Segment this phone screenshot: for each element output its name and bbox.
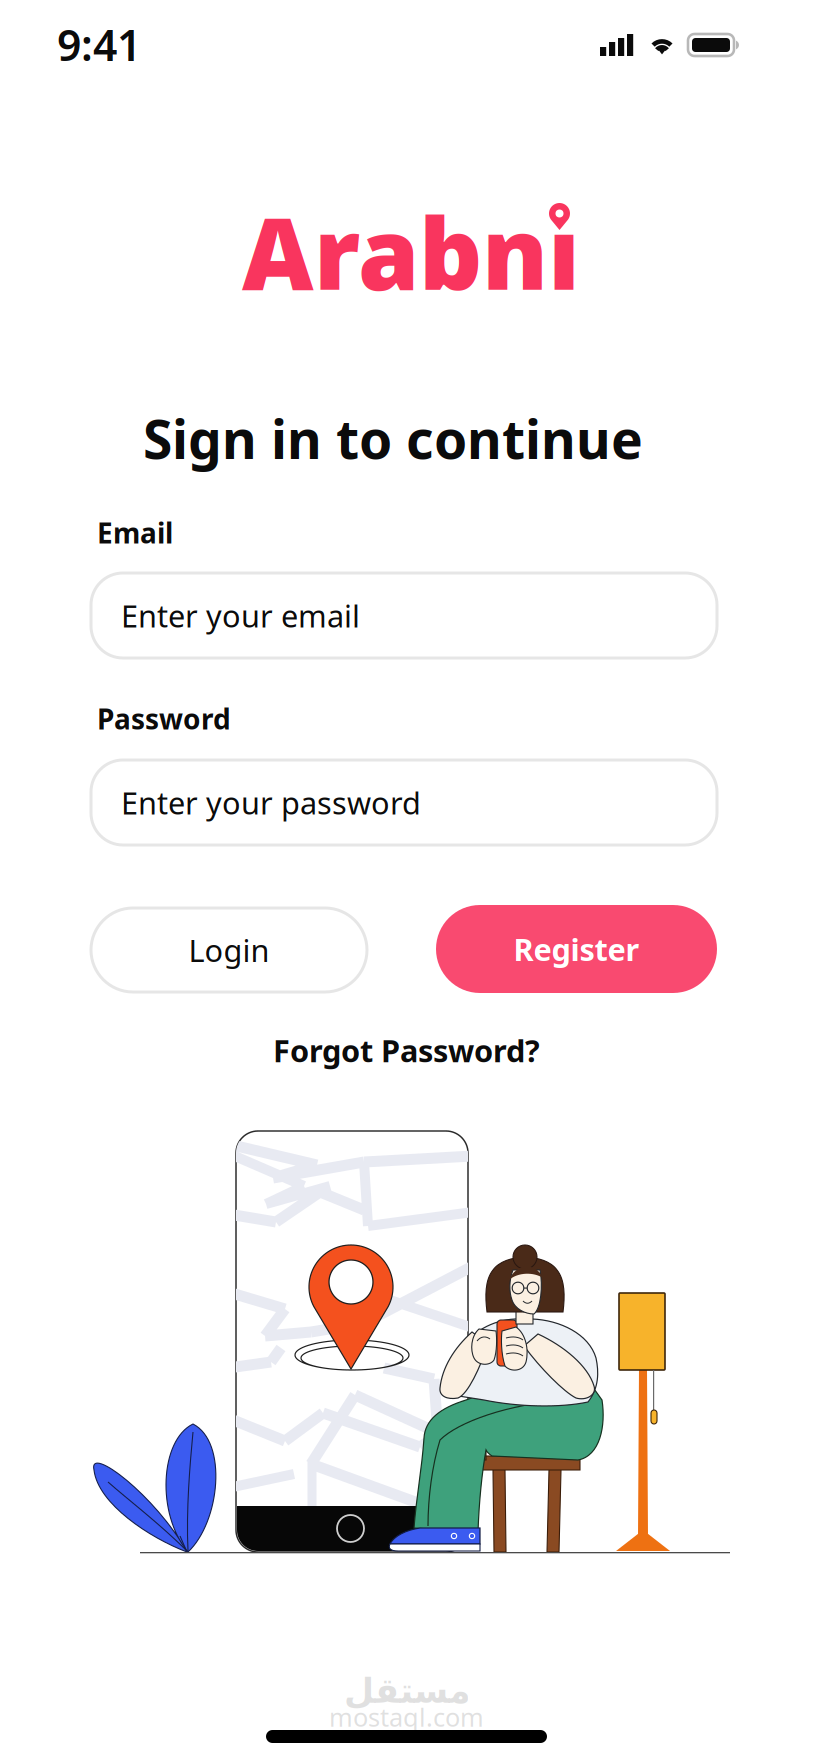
staticText: Password [97, 700, 231, 737]
staticText: mostaql.com [329, 1700, 484, 1734]
button[interactable]: Register [436, 905, 717, 993]
button[interactable]: Enter your email [91, 573, 717, 658]
staticText: Email [97, 514, 173, 551]
staticText: Forgot Password? [273, 1030, 540, 1071]
staticText: Enter your password [121, 782, 421, 823]
button[interactable]: Enter your password [91, 760, 717, 845]
staticText: 9:41 [57, 16, 141, 73]
button[interactable]: Forgot Password? [273, 1030, 540, 1071]
button[interactable]: Login [91, 908, 367, 992]
staticText: Login [188, 930, 269, 970]
staticText: Sign in to continue [143, 403, 643, 474]
staticText: Enter your email [121, 595, 360, 636]
staticText: Arabni [242, 186, 580, 317]
staticText: مستقل [343, 1671, 469, 1710]
staticText: Register [513, 929, 639, 969]
